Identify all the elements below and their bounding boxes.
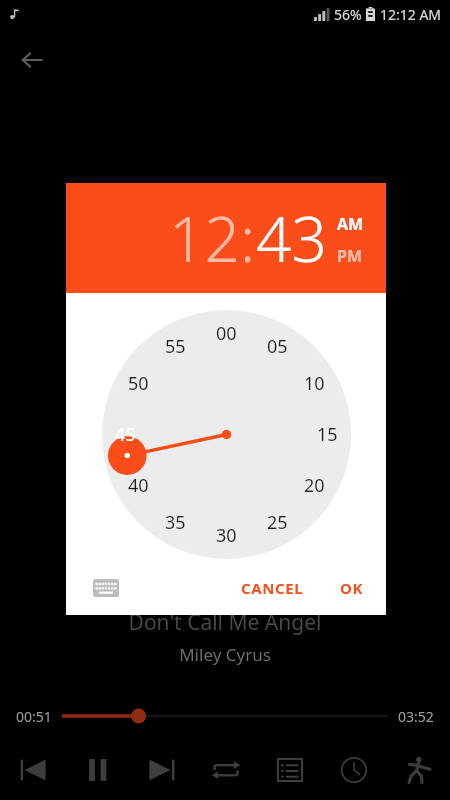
- staticText: 03:52: [398, 707, 434, 726]
- staticText: 10: [304, 371, 325, 396]
- staticText: Miley Cyrus: [0, 643, 450, 666]
- staticText: 55: [165, 334, 186, 359]
- staticText: PM: [337, 245, 363, 267]
- staticText: 45: [115, 422, 136, 447]
- button[interactable]: CANCEL: [233, 572, 312, 604]
- button[interactable]: 12: [169, 196, 240, 280]
- button[interactable]: PM: [337, 245, 363, 267]
- staticText: 12: [169, 196, 240, 280]
- staticText: 25: [267, 510, 288, 535]
- staticText: 50: [128, 371, 149, 396]
- button[interactable]: 43: [256, 196, 327, 280]
- staticText: CANCEL: [241, 578, 304, 598]
- button[interactable]: Keyboard input: [88, 570, 124, 606]
- staticText: 56%: [334, 5, 362, 24]
- staticText: AM: [337, 213, 364, 235]
- staticText: 30: [216, 523, 237, 548]
- staticText: 00:51: [16, 707, 52, 726]
- staticText: :: [240, 196, 256, 280]
- button[interactable]: OK: [332, 572, 372, 604]
- staticText: OK: [340, 578, 364, 598]
- button[interactable]: Pause: [65, 742, 130, 798]
- staticText: 05: [267, 334, 288, 359]
- button[interactable]: [62, 704, 388, 728]
- button[interactable]: 00: [102, 310, 351, 559]
- staticText: 20: [304, 473, 325, 498]
- button[interactable]: Playlist: [258, 742, 322, 798]
- staticText: 40: [128, 473, 149, 498]
- staticText: Don't Call Me Angel: [0, 608, 450, 637]
- staticText: 12:12 AM: [380, 5, 442, 24]
- button[interactable]: Back: [12, 40, 52, 80]
- staticText: 43: [256, 196, 327, 280]
- staticText: 00: [216, 321, 237, 346]
- button[interactable]: Walk mode: [386, 742, 450, 798]
- button[interactable]: Previous: [0, 742, 65, 798]
- button[interactable]: Next: [130, 742, 194, 798]
- button[interactable]: AM: [337, 213, 364, 235]
- staticText: 15: [317, 422, 338, 447]
- staticText: 35: [165, 510, 186, 535]
- button[interactable]: Repeat: [194, 742, 258, 798]
- button[interactable]: Sleep timer: [322, 742, 386, 798]
